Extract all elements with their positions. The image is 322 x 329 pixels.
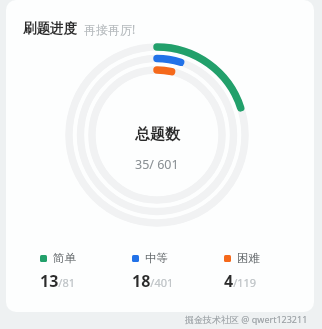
- staticText: 中等: [145, 251, 168, 265]
- staticText: 4/119: [224, 270, 257, 292]
- staticText: 再接再厉!: [84, 21, 136, 37]
- staticText: 刷题进度: [23, 20, 77, 37]
- staticText: 掘金技术社区 @ qwert123211: [185, 313, 308, 325]
- staticText: 简单: [53, 251, 76, 265]
- button[interactable]: 简单: [22, 247, 114, 296]
- button[interactable]: 中等: [114, 247, 206, 296]
- staticText: 总题数: [135, 125, 180, 144]
- button[interactable]: 刷题进度: [6, 0, 314, 312]
- staticText: 13/81: [40, 270, 75, 292]
- other: Progress rings: [61, 39, 253, 231]
- staticText: 18/401: [132, 270, 174, 292]
- staticText: 困难: [237, 251, 260, 265]
- button[interactable]: 困难: [206, 247, 298, 296]
- staticText: 35/ 601: [135, 156, 179, 173]
